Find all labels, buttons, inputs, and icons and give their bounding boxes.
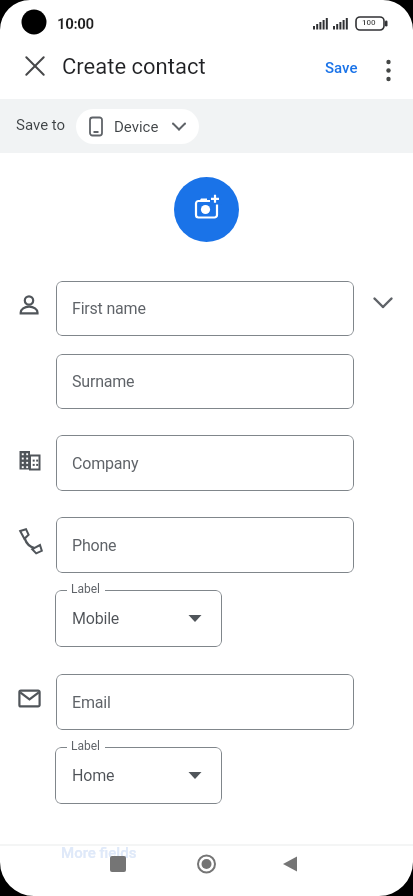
staticText: More fields <box>61 844 137 862</box>
button[interactable]: Surname <box>56 354 354 409</box>
button[interactable] <box>184 842 228 886</box>
staticText: Label <box>71 739 101 753</box>
staticText: Save <box>325 59 358 77</box>
staticText: Mobile <box>72 609 120 628</box>
staticText: Create contact <box>62 54 206 80</box>
button[interactable]: Company <box>56 435 354 491</box>
staticText: Email <box>72 693 111 712</box>
button[interactable] <box>372 52 406 86</box>
button[interactable]: Home <box>55 747 222 804</box>
staticText: Save to <box>16 116 66 134</box>
button[interactable]: Device <box>76 109 199 144</box>
button[interactable] <box>17 48 53 84</box>
staticText: Home <box>72 766 115 785</box>
staticText: Surname <box>72 372 135 391</box>
button[interactable]: First name <box>56 281 354 336</box>
button[interactable] <box>268 842 312 886</box>
staticText: Phone <box>72 536 117 555</box>
button[interactable]: Mobile <box>55 590 222 647</box>
staticText: Company <box>72 454 139 473</box>
staticText: Label <box>71 582 101 596</box>
button[interactable] <box>174 177 239 242</box>
button[interactable]: Phone <box>56 517 354 573</box>
button[interactable]: Email <box>56 674 354 730</box>
button[interactable] <box>366 291 400 325</box>
staticText: 100 <box>362 18 376 27</box>
button[interactable]: Save <box>315 52 367 84</box>
staticText: First name <box>72 299 146 318</box>
staticText: Device <box>114 118 159 136</box>
button[interactable] <box>96 842 140 886</box>
staticText: 10:00 <box>57 15 94 33</box>
